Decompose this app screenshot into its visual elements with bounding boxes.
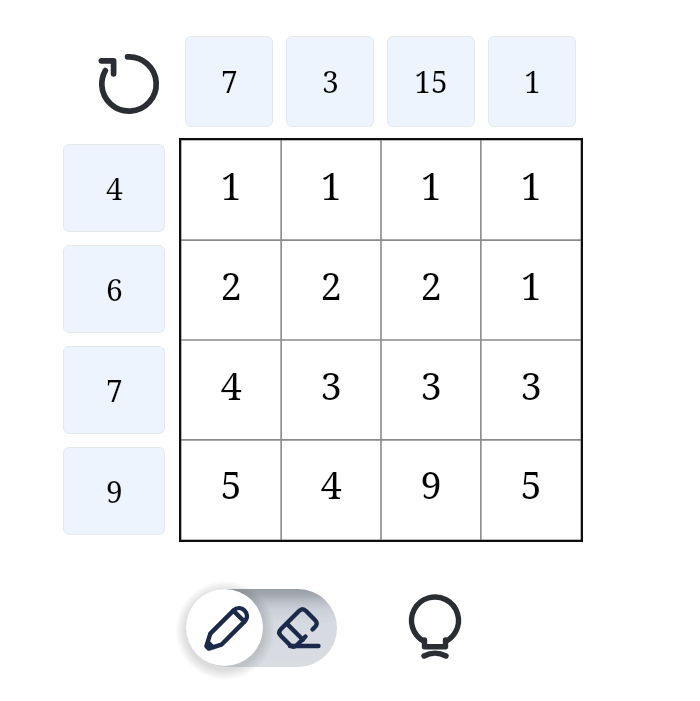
- button[interactable]: 3: [281, 335, 381, 435]
- staticText: 9: [106, 471, 123, 512]
- button[interactable]: 5: [181, 434, 281, 534]
- staticText: 6: [106, 269, 123, 310]
- staticText: 1: [220, 159, 242, 211]
- button[interactable]: Pen: [186, 589, 263, 666]
- button[interactable]: 6: [63, 245, 165, 333]
- staticText: 9: [420, 458, 442, 510]
- button[interactable]: 4: [281, 434, 381, 534]
- staticText: 1: [420, 159, 442, 211]
- button[interactable]: 9: [381, 434, 481, 534]
- staticText: 1: [320, 159, 342, 211]
- staticText: 1: [524, 61, 541, 102]
- staticText: 2: [320, 259, 342, 311]
- staticText: 1: [520, 259, 542, 311]
- button[interactable]: Hint: [400, 588, 470, 658]
- staticText: 7: [106, 370, 123, 411]
- button[interactable]: 1: [381, 135, 481, 235]
- button[interactable]: 2: [281, 235, 381, 335]
- staticText: 15: [414, 61, 448, 102]
- button[interactable]: 3: [286, 36, 374, 127]
- staticText: 5: [220, 458, 242, 510]
- button[interactable]: 15: [387, 36, 475, 127]
- staticText: 7: [221, 61, 238, 102]
- button[interactable]: 7: [185, 36, 273, 127]
- staticText: 2: [420, 259, 442, 311]
- button[interactable]: Restart: [95, 50, 163, 118]
- button[interactable]: 1: [481, 235, 581, 335]
- staticText: 4: [220, 359, 242, 411]
- staticText: 4: [320, 458, 342, 510]
- staticText: 3: [520, 359, 542, 411]
- button[interactable]: 2: [181, 235, 281, 335]
- button[interactable]: 7: [63, 346, 165, 434]
- staticText: 1: [520, 159, 542, 211]
- button[interactable]: 1: [181, 135, 281, 235]
- staticText: 3: [322, 61, 339, 102]
- button[interactable]: 3: [481, 335, 581, 435]
- button[interactable]: 5: [481, 434, 581, 534]
- button[interactable]: 3: [381, 335, 481, 435]
- staticText: 4: [106, 168, 123, 209]
- button[interactable]: 4: [63, 144, 165, 232]
- button[interactable]: 1: [481, 135, 581, 235]
- button[interactable]: 4: [181, 335, 281, 435]
- button[interactable]: 9: [63, 447, 165, 535]
- staticText: 2: [220, 259, 242, 311]
- staticText: 5: [520, 458, 542, 510]
- staticText: 3: [420, 359, 442, 411]
- staticText: 3: [320, 359, 342, 411]
- button[interactable]: 1: [488, 36, 576, 127]
- button[interactable]: 2: [381, 235, 481, 335]
- button[interactable]: Eraser: [259, 589, 337, 667]
- button[interactable]: 1: [281, 135, 381, 235]
